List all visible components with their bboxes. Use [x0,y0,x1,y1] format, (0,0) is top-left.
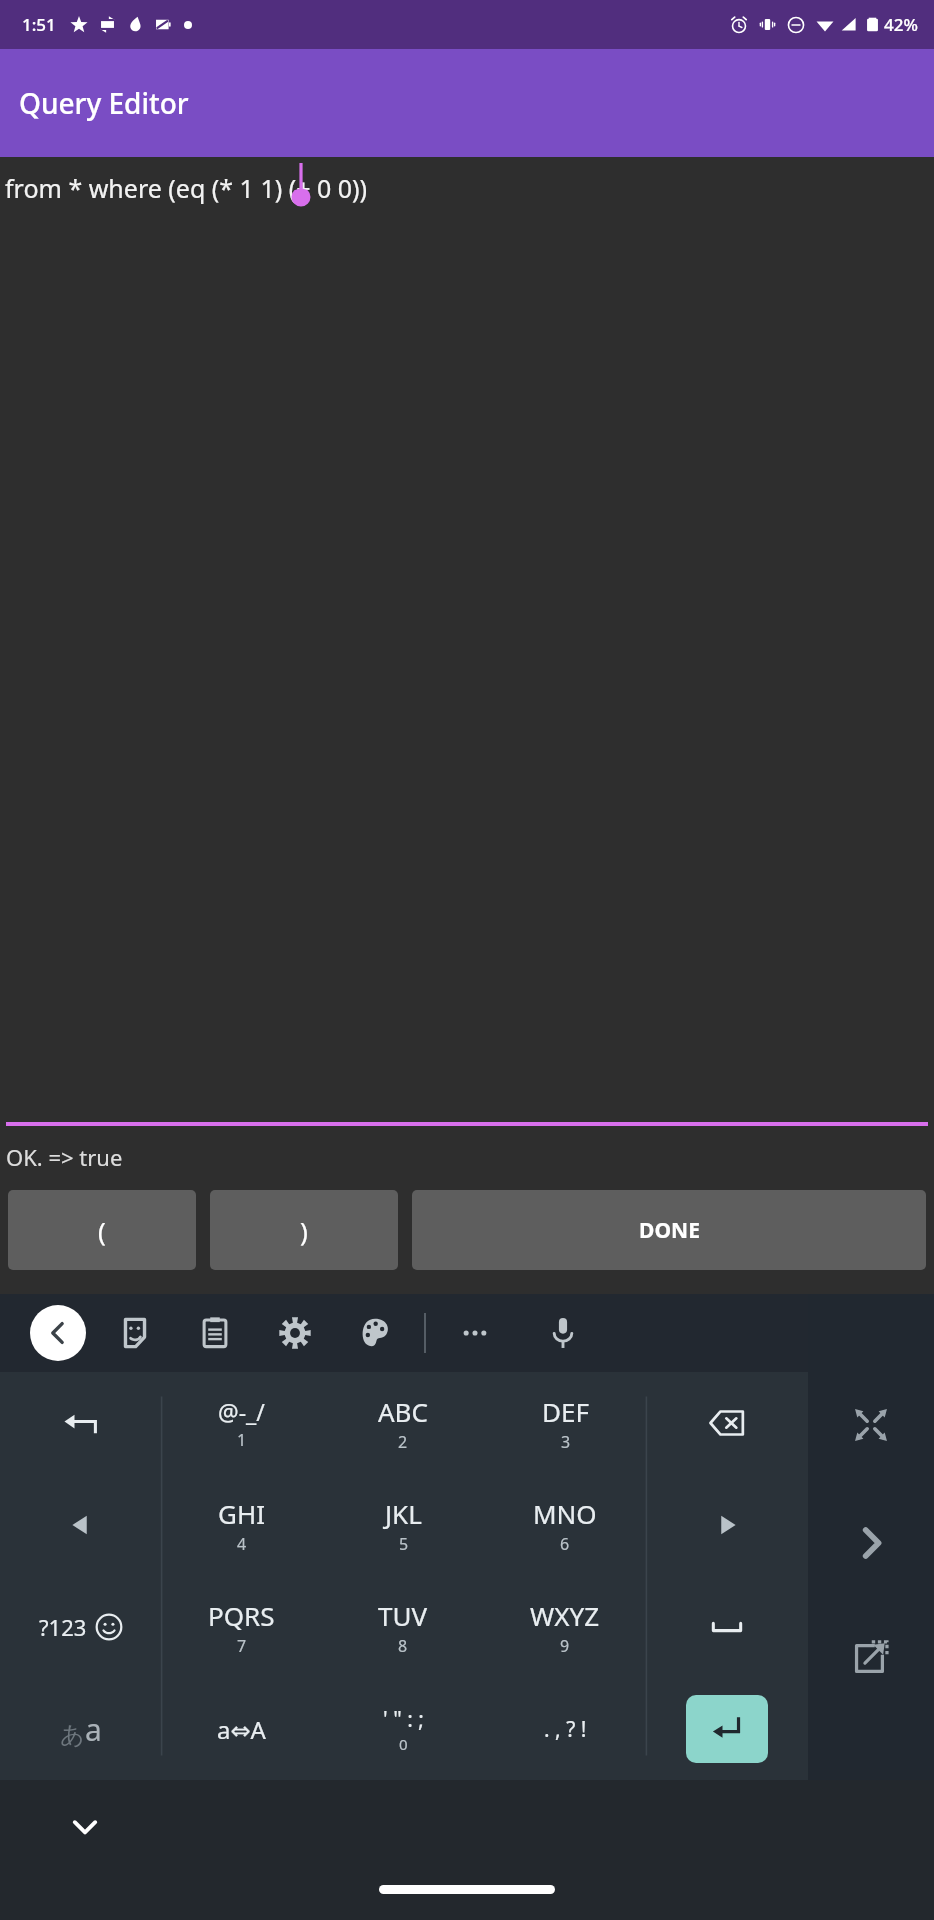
staticText: @-_/ [218,1396,265,1427]
button[interactable]: Floating keyboard [842,1628,900,1686]
staticText: 3 [561,1431,571,1453]
staticText: 2 [398,1431,408,1453]
button[interactable]: @-_/ [161,1372,322,1474]
button[interactable]: ) [210,1190,398,1270]
button[interactable]: DONE [412,1190,926,1270]
staticText: ) [300,1213,308,1248]
staticText: 5 [399,1533,409,1555]
staticText: 42% [884,13,918,36]
button[interactable]: More options [452,1310,498,1356]
button[interactable]: DEF [484,1372,646,1474]
button[interactable]: Voice input [540,1310,586,1356]
staticText: 8 [398,1635,408,1657]
button[interactable]: Space [646,1576,808,1678]
staticText: 6 [560,1533,570,1555]
staticText: 1 [237,1429,247,1451]
staticText: 9 [560,1635,570,1657]
button[interactable]: Backspace [646,1372,808,1474]
button[interactable]: Switch language [0,1678,161,1780]
button[interactable]: WXYZ [484,1576,646,1678]
button[interactable]: Resize keyboard [842,1396,900,1454]
button[interactable]: PQRS [161,1576,322,1678]
button[interactable]: Cursor right [646,1474,808,1576]
staticText: GHI [218,1496,266,1531]
staticText: Query Editor [19,84,189,122]
staticText: OK. => true [6,1142,123,1172]
staticText: ABC [378,1394,428,1429]
staticText: ?123 [39,1612,87,1642]
staticText: あ [60,1720,85,1750]
button[interactable]: Theme [352,1310,398,1356]
staticText: . , ? ! [544,1715,587,1744]
button[interactable]: Back [30,1305,86,1361]
button[interactable]: JKL [322,1474,484,1576]
staticText: ( [98,1213,106,1248]
staticText: DEF [542,1394,589,1429]
staticText: 0 [399,1734,408,1754]
staticText: 7 [237,1635,247,1657]
staticText: 4 [237,1533,247,1555]
button[interactable]: ' " : ; [322,1678,484,1780]
button[interactable]: Enter [686,1695,768,1763]
button[interactable]: ABC [322,1372,484,1474]
button[interactable]: Move right [842,1514,900,1572]
button[interactable]: Symbols and emoji [0,1576,161,1678]
staticText: ' " : ; [383,1705,424,1734]
button[interactable]: Stickers [112,1310,158,1356]
staticText: PQRS [208,1598,275,1633]
button[interactable]: Clipboard [192,1310,238,1356]
button[interactable]: Cursor left [0,1474,161,1576]
staticText: JKL [385,1496,422,1531]
button[interactable]: Undo [0,1372,161,1474]
button[interactable]: from * where (eq (* 1 1) (+ 0 0)) [0,157,934,1122]
button[interactable]: Hide keyboard [58,1800,112,1854]
staticText: a [85,1709,102,1750]
button[interactable]: . , ? ! [484,1678,646,1780]
staticText: a⇔A [217,1713,266,1746]
staticText: 1:51 [22,13,56,36]
button[interactable]: a⇔A [161,1678,322,1780]
staticText: WXYZ [530,1598,600,1633]
button[interactable]: GHI [161,1474,322,1576]
button[interactable]: MNO [484,1474,646,1576]
staticText: TUV [378,1598,428,1633]
button[interactable]: ( [8,1190,196,1270]
button[interactable]: Settings [272,1310,318,1356]
staticText: from * where (eq (* 1 1) (+ 0 0)) [5,171,368,205]
staticText: DONE [639,1216,700,1245]
button[interactable]: TUV [322,1576,484,1678]
staticText: MNO [533,1496,597,1531]
